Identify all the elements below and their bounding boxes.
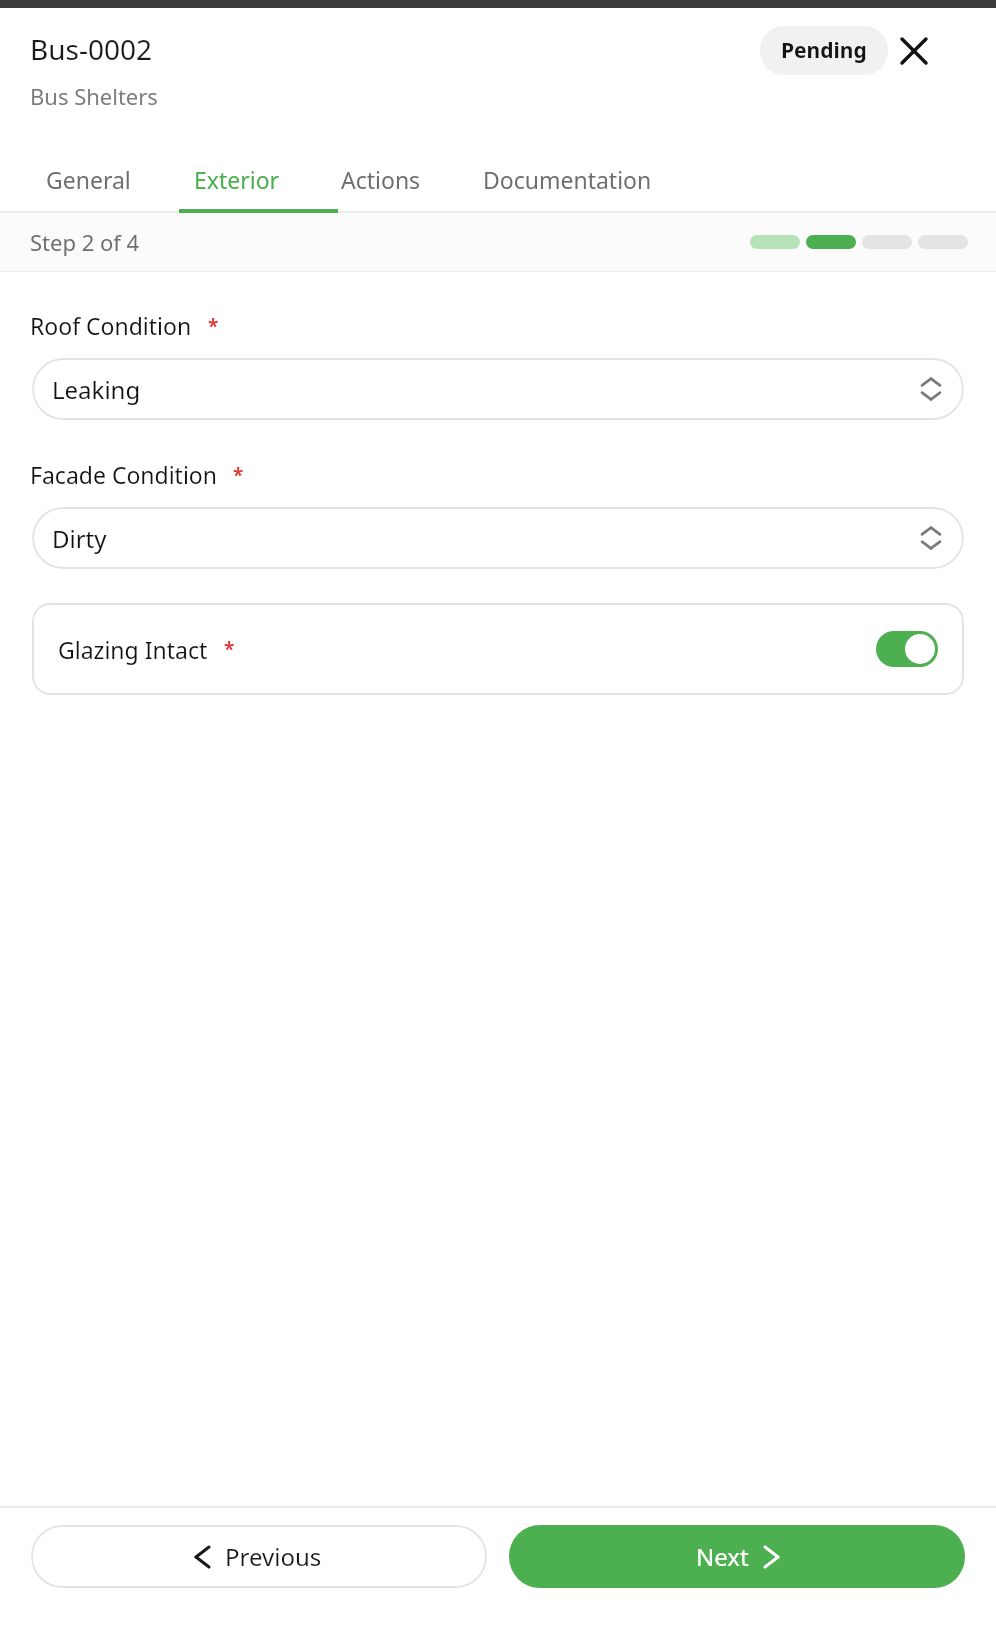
other: Glazing Intact toggle xyxy=(876,631,938,667)
staticText: Leaking xyxy=(52,373,141,406)
staticText: Previous xyxy=(225,1540,322,1573)
staticText: * xyxy=(233,462,244,488)
button[interactable]: Pending xyxy=(760,26,888,75)
staticText: Next xyxy=(696,1540,749,1573)
staticText: Facade Condition xyxy=(30,459,217,490)
staticText: Roof Condition xyxy=(30,310,192,341)
button[interactable]: Actions xyxy=(341,145,421,213)
button[interactable]: Leaking xyxy=(32,358,964,420)
staticText: Pending xyxy=(781,36,867,65)
button[interactable]: Documentation xyxy=(483,145,652,213)
staticText: Documentation xyxy=(483,164,652,195)
button[interactable]: Exterior xyxy=(194,145,280,213)
staticText: * xyxy=(224,636,235,662)
staticText: Bus-0002 xyxy=(30,30,152,68)
staticText: Step 2 of 4 xyxy=(30,227,140,257)
button[interactable]: Dirty xyxy=(32,507,964,569)
staticText: Actions xyxy=(341,164,421,195)
staticText: Exterior xyxy=(194,164,280,195)
staticText: General xyxy=(46,164,131,195)
staticText: Glazing Intact xyxy=(58,634,208,665)
button[interactable]: Previous xyxy=(31,1525,487,1588)
button[interactable]: Glazing Intact xyxy=(32,603,964,695)
button[interactable]: General xyxy=(46,145,131,213)
button[interactable]: Next xyxy=(509,1525,965,1588)
button[interactable]: Close xyxy=(892,29,936,73)
staticText: Bus Shelters xyxy=(30,81,158,111)
staticText: Dirty xyxy=(52,522,107,555)
staticText: * xyxy=(208,313,219,339)
